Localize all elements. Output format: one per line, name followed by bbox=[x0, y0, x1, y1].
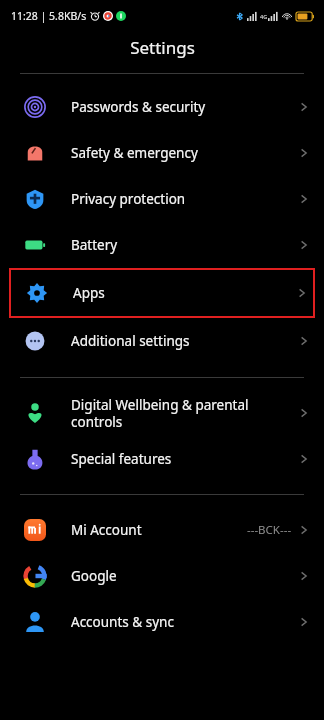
button[interactable]: Google bbox=[0, 553, 324, 599]
staticText: Special features bbox=[71, 450, 298, 468]
button[interactable]: Battery bbox=[0, 222, 324, 268]
staticText: Settings bbox=[130, 36, 195, 59]
staticText: Additional settings bbox=[71, 332, 298, 350]
staticText: Mi Account bbox=[71, 521, 247, 539]
staticText: Apps bbox=[73, 284, 296, 302]
staticText: Battery bbox=[71, 236, 298, 254]
button[interactable]: Mi Account bbox=[0, 507, 324, 553]
button[interactable]: Privacy protection bbox=[0, 176, 324, 222]
button[interactable]: Passwords & security bbox=[0, 84, 324, 130]
button[interactable]: Apps bbox=[11, 270, 313, 316]
staticText: Safety & emergency bbox=[71, 144, 298, 162]
button[interactable]: Special features bbox=[0, 436, 324, 482]
staticText: Digital Wellbeing & parental controls bbox=[71, 396, 298, 431]
staticText: Google bbox=[71, 567, 298, 585]
staticText: ---BCK--- bbox=[247, 522, 292, 538]
button[interactable]: Digital Wellbeing & parental controls bbox=[0, 390, 324, 436]
staticText: 4G bbox=[260, 13, 268, 20]
staticText: 11:28 | 5.8KB/s bbox=[11, 9, 87, 23]
staticText: Privacy protection bbox=[71, 190, 298, 208]
staticText: Accounts & sync bbox=[71, 613, 298, 631]
button[interactable]: Accounts & sync bbox=[0, 599, 324, 645]
staticText: Passwords & security bbox=[71, 98, 298, 116]
button[interactable]: Safety & emergency bbox=[0, 130, 324, 176]
button[interactable]: Additional settings bbox=[0, 318, 324, 364]
